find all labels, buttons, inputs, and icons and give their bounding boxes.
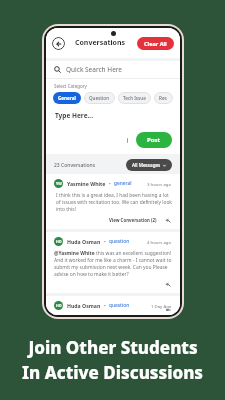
staticText: Clear All <box>144 40 167 47</box>
staticText: Yasmine White <box>67 180 106 187</box>
staticText: question <box>109 238 130 245</box>
staticText: Join Other Students <box>28 336 198 359</box>
button[interactable]: All Messages <box>126 159 172 171</box>
staticText: General <box>58 95 76 101</box>
staticText: question <box>109 302 130 309</box>
staticText: • <box>109 181 111 187</box>
button[interactable]: Clear All <box>137 37 174 50</box>
staticText: @Yasmine White this was an excellent sug… <box>54 250 172 278</box>
button[interactable]: Attach <box>123 136 131 144</box>
staticText: • <box>104 239 106 245</box>
staticText: 3 hours ago <box>147 181 172 187</box>
staticText: Question <box>89 95 110 101</box>
button[interactable]: YW <box>46 174 180 229</box>
staticText: Tech Issue <box>123 95 146 101</box>
button[interactable]: HO <box>46 232 180 293</box>
staticText: YW <box>56 181 62 186</box>
staticText: View Conversation (2) <box>109 217 157 223</box>
staticText: 23 Conversations <box>54 162 96 169</box>
button[interactable]: Tech Issue <box>118 92 151 104</box>
staticText: I think this is a great idea, I had been… <box>56 192 172 213</box>
staticText: Resources <box>159 95 168 101</box>
button[interactable]: View Conversation (2) <box>107 216 159 224</box>
button[interactable]: Post <box>136 132 172 148</box>
staticText: 4 hours ago <box>147 239 172 245</box>
staticText: HO <box>56 303 62 308</box>
staticText: Type Here... <box>55 111 93 120</box>
button[interactable]: Reply <box>164 216 172 224</box>
button[interactable]: Question <box>84 92 115 104</box>
staticText: Huda Osman <box>67 238 101 245</box>
staticText: In Active Discussions <box>22 361 203 384</box>
staticText: general <box>114 180 132 187</box>
staticText: Conversations <box>75 38 126 48</box>
staticText: 1 Day Ago <box>151 303 172 309</box>
staticText: Select Category <box>54 83 87 89</box>
staticText: All Messages <box>132 162 161 168</box>
staticText: Post <box>147 136 161 144</box>
button[interactable]: Back <box>52 37 65 50</box>
button[interactable]: HO <box>46 296 180 315</box>
staticText: • <box>104 303 106 309</box>
button[interactable]: Reply <box>164 280 172 288</box>
staticText: Quick Search Here <box>66 65 123 74</box>
staticText: HO <box>56 239 62 244</box>
button[interactable]: Resources <box>154 92 173 104</box>
staticText: Huda Osman <box>67 302 101 309</box>
button[interactable]: General <box>53 92 81 104</box>
button[interactable]: Quick Search Here <box>46 61 180 78</box>
